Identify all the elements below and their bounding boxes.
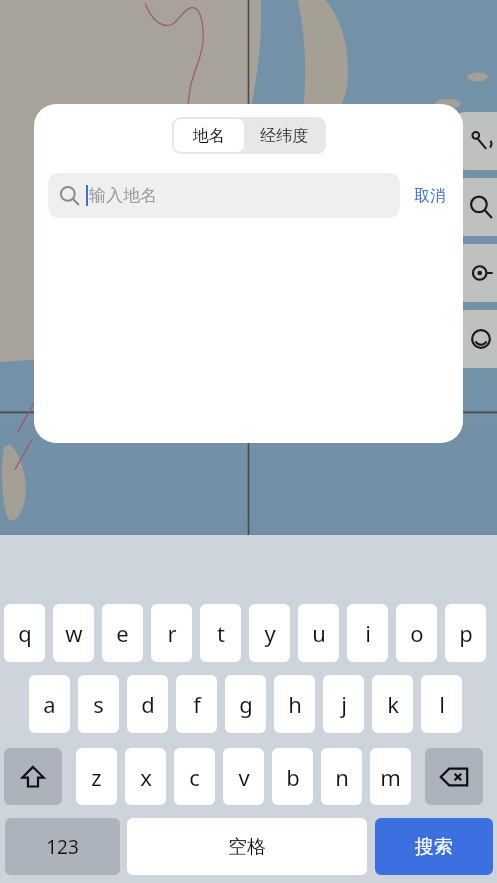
staticText: k — [387, 689, 399, 719]
button[interactable]: r — [151, 604, 192, 662]
staticText: p — [459, 618, 473, 648]
staticText: 地名 — [193, 126, 225, 146]
button[interactable]: Layers — [452, 244, 497, 302]
staticText: c — [189, 762, 200, 792]
staticText: x — [140, 762, 152, 792]
button[interactable]: 地名 — [174, 119, 244, 152]
button[interactable]: s — [78, 675, 119, 733]
staticText: z — [91, 762, 102, 792]
staticText: a — [43, 689, 56, 719]
staticText: w — [65, 618, 83, 648]
button[interactable]: Shift — [4, 748, 62, 805]
staticText: t — [217, 618, 225, 648]
staticText: v — [238, 762, 250, 792]
button[interactable]: z — [76, 748, 117, 805]
staticText: j — [341, 689, 347, 719]
button[interactable]: f — [176, 675, 217, 733]
staticText: g — [239, 689, 253, 719]
button[interactable]: 搜索 — [375, 818, 493, 875]
button[interactable]: n — [321, 748, 362, 805]
button[interactable]: 空格 — [127, 818, 367, 875]
staticText: 取消 — [414, 186, 446, 206]
staticText: m — [380, 762, 401, 792]
staticText: s — [93, 689, 104, 719]
button[interactable]: b — [272, 748, 313, 805]
staticText: 123 — [46, 834, 79, 860]
staticText: 输入地名 — [89, 185, 157, 206]
button[interactable]: Search — [452, 178, 497, 236]
button[interactable]: 123 — [5, 818, 120, 875]
staticText: u — [312, 618, 326, 648]
staticText: e — [116, 618, 129, 648]
staticText: d — [141, 689, 155, 719]
button[interactable]: a — [29, 675, 70, 733]
button[interactable]: 输入地名 — [48, 173, 400, 218]
button[interactable]: c — [174, 748, 215, 805]
button[interactable]: p — [445, 604, 486, 662]
button[interactable]: Measure — [452, 112, 497, 170]
button[interactable]: h — [274, 675, 315, 733]
staticText: b — [286, 762, 300, 792]
button[interactable]: q — [4, 604, 45, 662]
button[interactable]: 经纬度 — [244, 119, 324, 152]
button[interactable]: v — [223, 748, 264, 805]
button[interactable]: t — [200, 604, 241, 662]
button[interactable]: x — [125, 748, 166, 805]
staticText: y — [264, 618, 276, 648]
button[interactable]: w — [53, 604, 94, 662]
button[interactable]: e — [102, 604, 143, 662]
button[interactable]: i — [347, 604, 388, 662]
button[interactable]: Compass — [452, 310, 497, 368]
button[interactable]: g — [225, 675, 266, 733]
button[interactable]: Delete — [425, 748, 483, 805]
staticText: 经纬度 — [260, 126, 308, 146]
button[interactable]: 取消 — [412, 180, 448, 212]
button[interactable]: m — [370, 748, 411, 805]
button[interactable]: j — [323, 675, 364, 733]
staticText: q — [18, 618, 32, 648]
staticText: n — [335, 762, 349, 792]
button[interactable]: y — [249, 604, 290, 662]
button[interactable]: l — [421, 675, 462, 733]
staticText: o — [410, 618, 424, 648]
staticText: 搜索 — [415, 835, 453, 859]
button[interactable]: u — [298, 604, 339, 662]
staticText: i — [365, 618, 371, 648]
button[interactable]: o — [396, 604, 437, 662]
staticText: h — [288, 689, 302, 719]
button[interactable]: d — [127, 675, 168, 733]
staticText: f — [193, 689, 201, 719]
staticText: l — [439, 689, 445, 719]
staticText: r — [167, 618, 177, 648]
staticText: 空格 — [228, 835, 266, 859]
button[interactable]: k — [372, 675, 413, 733]
